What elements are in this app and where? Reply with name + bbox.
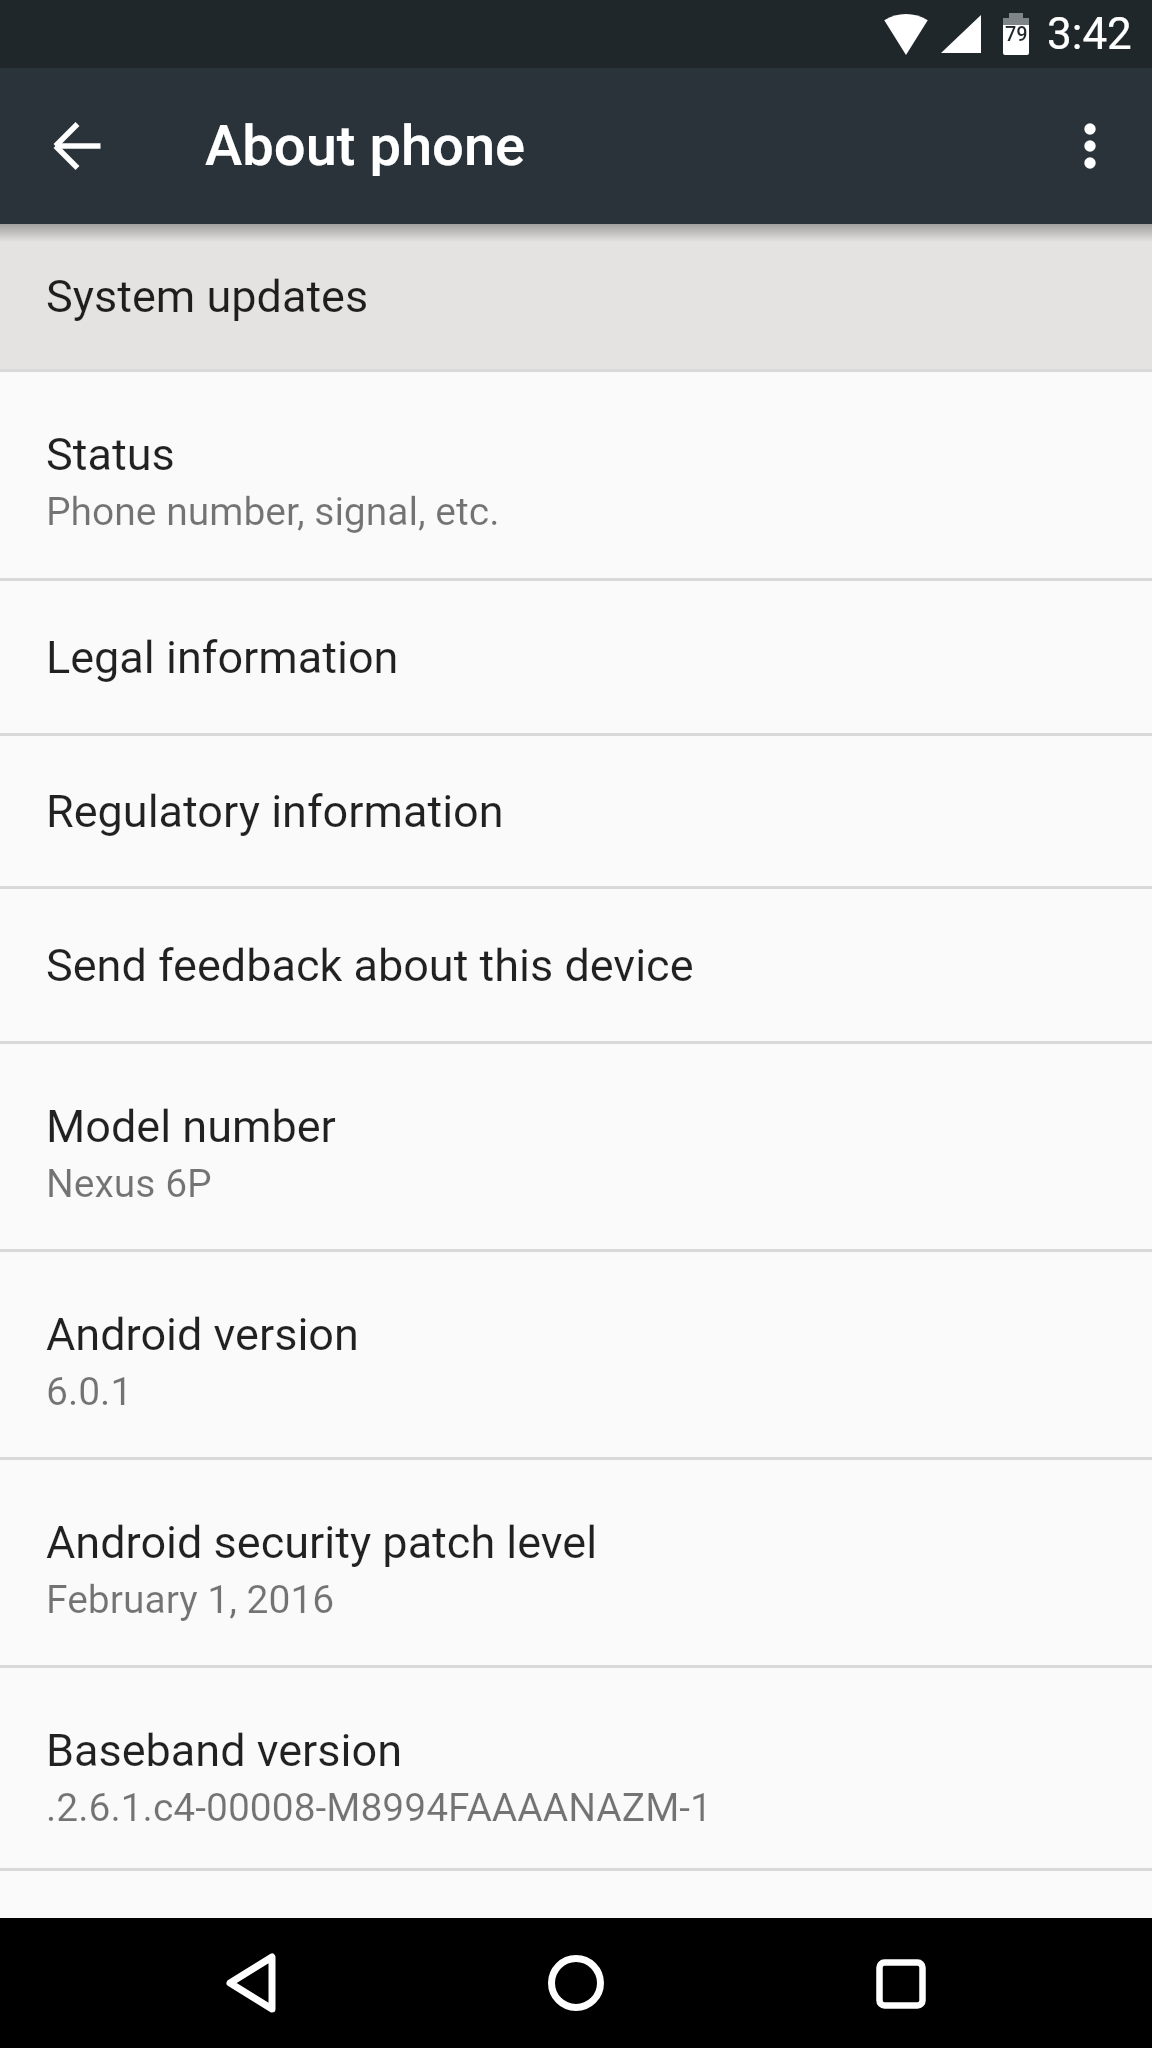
button[interactable]: Android version bbox=[0, 1252, 1152, 1457]
staticText: 3:42 bbox=[1047, 8, 1132, 60]
button[interactable]: Model number bbox=[0, 1044, 1152, 1249]
staticText: Legal information bbox=[46, 631, 399, 684]
staticText: Send feedback about this device bbox=[46, 939, 694, 992]
button[interactable]: Regulatory information bbox=[0, 736, 1152, 886]
button[interactable]: Send feedback about this device bbox=[0, 889, 1152, 1041]
button[interactable]: Android security patch level bbox=[0, 1460, 1152, 1665]
staticText: Android version bbox=[46, 1308, 359, 1361]
staticText: 79 bbox=[1005, 22, 1028, 45]
button[interactable]: System updates bbox=[0, 224, 1152, 369]
button[interactable] bbox=[40, 108, 116, 184]
staticText: Baseband version bbox=[46, 1724, 403, 1777]
staticText: Phone number, signal, etc. bbox=[46, 489, 500, 535]
staticText: February 1, 2016 bbox=[46, 1577, 335, 1623]
button[interactable] bbox=[1052, 108, 1128, 184]
button[interactable]: Legal information bbox=[0, 581, 1152, 733]
staticText: 6.0.1 bbox=[46, 1369, 133, 1415]
staticText: Regulatory information bbox=[46, 785, 504, 838]
staticText: Status bbox=[46, 428, 175, 481]
staticText: Android security patch level bbox=[46, 1516, 598, 1569]
button[interactable]: Status bbox=[0, 372, 1152, 578]
button[interactable] bbox=[213, 1945, 289, 2021]
staticText: System updates bbox=[46, 270, 369, 323]
staticText: Model number bbox=[46, 1100, 336, 1153]
staticText: Nexus 6P bbox=[46, 1161, 212, 1207]
staticText: .2.6.1.c4-00008-M8994FAAAANAZM-1 bbox=[46, 1785, 712, 1831]
button[interactable] bbox=[863, 1945, 939, 2021]
staticText: About phone bbox=[205, 113, 526, 179]
button[interactable] bbox=[538, 1945, 614, 2021]
button[interactable]: Baseband version bbox=[0, 1668, 1152, 1868]
